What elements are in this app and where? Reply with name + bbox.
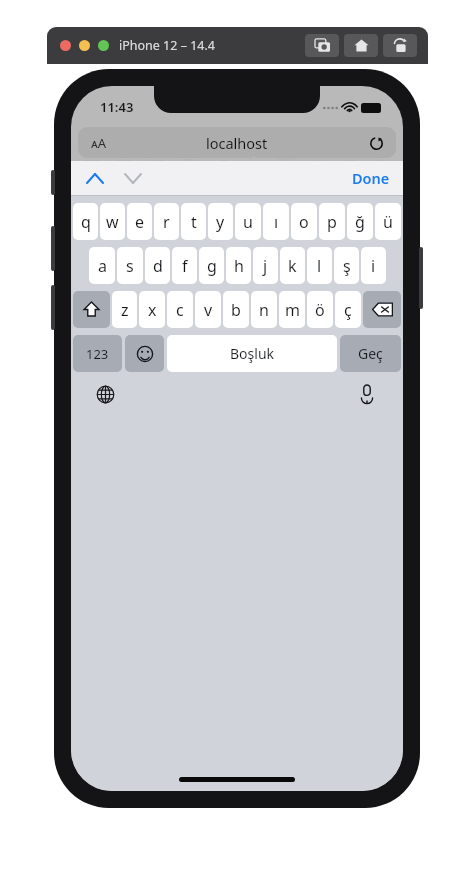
staticText: l	[317, 255, 322, 277]
button[interactable]: ş	[334, 247, 359, 284]
button[interactable]: n	[251, 291, 277, 328]
staticText: q	[81, 211, 91, 233]
button[interactable]: Next field	[119, 164, 147, 192]
staticText: 11:43	[100, 98, 134, 116]
staticText: f	[182, 255, 188, 277]
button[interactable]: Minimize	[79, 40, 90, 51]
staticText: 123	[86, 345, 109, 363]
button[interactable]: a	[89, 247, 115, 284]
button[interactable]: x	[139, 291, 165, 328]
staticText: iPhone 12 – 14.4	[119, 37, 215, 54]
button[interactable]: Boşluk	[167, 335, 337, 372]
staticText: t	[191, 211, 197, 233]
button[interactable]: e	[127, 203, 152, 240]
staticText: v	[204, 299, 213, 321]
staticText: ö	[315, 299, 325, 321]
button[interactable]: j	[253, 247, 278, 284]
button[interactable]: Dictate	[352, 379, 382, 409]
button[interactable]: v	[195, 291, 221, 328]
staticText: ç	[344, 299, 352, 321]
staticText: s	[126, 255, 134, 277]
button[interactable]: h	[226, 247, 251, 284]
button[interactable]: r	[154, 203, 179, 240]
button[interactable]: Zoom	[98, 40, 109, 51]
button[interactable]: c	[167, 291, 193, 328]
button[interactable]: ö	[307, 291, 333, 328]
button[interactable]: y	[208, 203, 233, 240]
button[interactable]: w	[100, 203, 125, 240]
button[interactable]: Geç	[340, 335, 401, 372]
button[interactable]: ü	[375, 203, 401, 240]
button[interactable]: 123	[73, 335, 122, 372]
staticText: n	[259, 299, 269, 321]
button[interactable]: z	[112, 291, 137, 328]
button[interactable]: u	[235, 203, 261, 240]
button[interactable]: s	[117, 247, 143, 284]
button[interactable]: Emoji	[125, 335, 164, 372]
staticText: localhost	[206, 133, 268, 153]
button[interactable]: ğ	[347, 203, 373, 240]
button[interactable]: d	[145, 247, 170, 284]
staticText: ü	[383, 211, 393, 233]
staticText: p	[327, 211, 337, 233]
staticText: z	[121, 299, 129, 321]
button[interactable]: g	[199, 247, 224, 284]
button[interactable]: p	[319, 203, 345, 240]
button[interactable]: m	[279, 291, 305, 328]
button[interactable]: Previous field	[81, 164, 109, 192]
button[interactable]: t	[181, 203, 206, 240]
button[interactable]: ç	[335, 291, 361, 328]
staticText: w	[106, 211, 119, 233]
staticText: Done	[352, 168, 390, 188]
staticText: j	[263, 255, 268, 277]
staticText: Geç	[358, 344, 383, 363]
button[interactable]: f	[172, 247, 197, 284]
staticText: g	[207, 255, 217, 277]
staticText: a	[98, 255, 107, 277]
staticText: ı	[274, 211, 279, 233]
button[interactable]: ı	[263, 203, 289, 240]
staticText: h	[234, 255, 244, 277]
button[interactable]: ᴀA	[78, 127, 396, 158]
staticText: e	[135, 211, 145, 233]
button[interactable]: Home	[344, 34, 378, 57]
button[interactable]: i	[361, 247, 386, 284]
staticText: u	[243, 211, 253, 233]
button[interactable]: Change keyboard	[90, 379, 120, 409]
staticText: b	[231, 299, 241, 321]
button[interactable]: q	[73, 203, 98, 240]
staticText: ş	[343, 255, 351, 277]
button[interactable]: Done	[347, 163, 395, 193]
staticText: c	[176, 299, 184, 321]
button[interactable]: Reload page	[365, 132, 387, 154]
button[interactable]: Backspace	[363, 291, 401, 328]
staticText: d	[153, 255, 163, 277]
staticText: o	[299, 211, 309, 233]
staticText: Boşluk	[230, 344, 275, 363]
staticText: k	[288, 255, 297, 277]
staticText: m	[285, 299, 300, 321]
button[interactable]: Rotate	[383, 34, 417, 57]
staticText: ᴀA	[91, 134, 107, 152]
button[interactable]: b	[223, 291, 249, 328]
button[interactable]: o	[291, 203, 317, 240]
staticText: i	[371, 255, 376, 277]
button[interactable]: Screenshot	[305, 34, 339, 57]
button[interactable]: Shift	[73, 291, 110, 328]
staticText: ğ	[355, 211, 365, 233]
button[interactable]: k	[280, 247, 305, 284]
button[interactable]: l	[307, 247, 332, 284]
staticText: y	[216, 211, 225, 233]
staticText: x	[148, 299, 157, 321]
staticText: r	[163, 211, 170, 233]
button[interactable]: Close	[60, 40, 71, 51]
